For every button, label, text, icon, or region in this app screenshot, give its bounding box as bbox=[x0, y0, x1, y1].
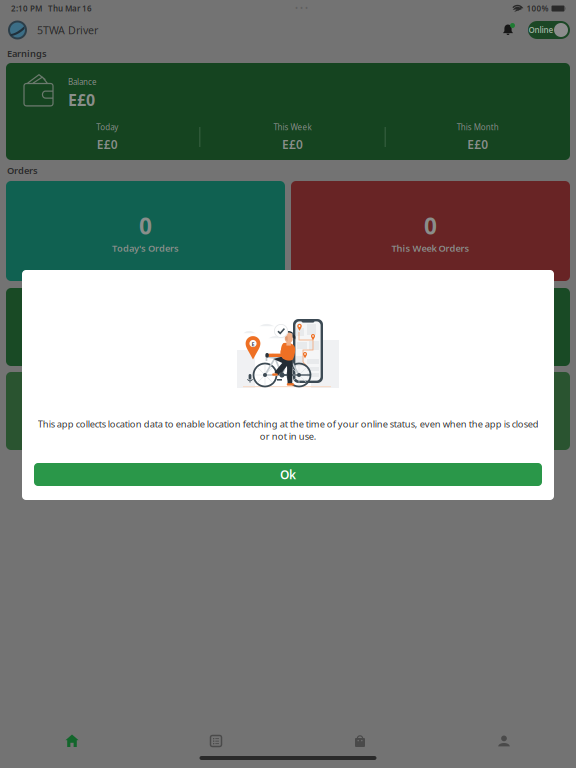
staticText: Online bbox=[528, 25, 553, 35]
staticText: E£0 bbox=[68, 89, 95, 110]
button[interactable]: Home bbox=[0, 712, 144, 756]
staticText: Balance bbox=[68, 77, 97, 87]
staticText: 2:10 PM Thu Mar 16 bbox=[11, 3, 92, 14]
staticText: E£0 bbox=[97, 136, 118, 152]
button[interactable]: Orders bbox=[144, 712, 288, 756]
staticText: E£0 bbox=[467, 136, 488, 152]
button[interactable]: Notifications bbox=[501, 23, 515, 37]
staticText: 100% bbox=[526, 3, 548, 14]
staticText: 5TWA Driver bbox=[37, 23, 98, 37]
staticText: This Week Orders bbox=[391, 242, 469, 254]
staticText: • • • bbox=[295, 4, 308, 13]
staticText: E£0 bbox=[282, 136, 303, 152]
staticText: Orders bbox=[7, 164, 38, 177]
staticText: Earnings bbox=[7, 47, 47, 60]
button[interactable]: This week orders bbox=[291, 181, 570, 281]
staticText: Today's Orders bbox=[112, 242, 179, 254]
staticText: Ok bbox=[280, 466, 296, 482]
button[interactable]: Today's orders bbox=[6, 181, 285, 281]
staticText: Today bbox=[96, 122, 118, 132]
staticText: 0 bbox=[424, 211, 437, 241]
button[interactable]: Online bbox=[528, 21, 570, 39]
staticText: This Week bbox=[273, 122, 311, 132]
staticText: This Month bbox=[457, 122, 499, 132]
staticText: 0 bbox=[139, 211, 152, 241]
staticText: This app collects location data to enabl… bbox=[37, 418, 538, 442]
button[interactable]: Ok bbox=[34, 463, 542, 486]
button[interactable]: Profile bbox=[432, 712, 576, 756]
staticText: E bbox=[252, 341, 255, 348]
button[interactable]: Store bbox=[288, 712, 432, 756]
